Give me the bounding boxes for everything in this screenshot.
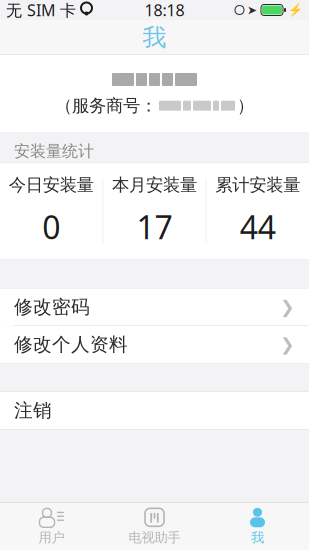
staticText: 17 (136, 206, 172, 248)
staticText: ❯ (280, 335, 295, 354)
staticText: 无 SIM 卡 (6, 0, 76, 21)
staticText: 安装量统计 (14, 141, 94, 161)
staticText: 我 (251, 529, 264, 546)
staticText: 本月安装量 (112, 174, 197, 196)
button[interactable]: 注销 (0, 392, 309, 429)
staticText: 电视助手 (128, 529, 180, 546)
staticText: 44 (240, 206, 276, 248)
button[interactable]: 修改密码 (0, 289, 309, 326)
staticText: 累计安装量 (215, 174, 300, 196)
staticText: 今日安装量 (9, 174, 94, 196)
staticText: ⚡ (288, 3, 303, 17)
staticText: ➤ (247, 3, 257, 17)
staticText: ❯ (280, 297, 295, 317)
staticText: 注销 (14, 399, 52, 422)
staticText: 修改密码 (14, 296, 90, 318)
staticText: 0 (42, 206, 60, 248)
staticText: 用户 (38, 529, 64, 546)
button[interactable]: 电视助手 (103, 503, 206, 550)
staticText: ） (237, 95, 254, 116)
staticText: 18:18 (144, 0, 184, 21)
button[interactable]: 用户 (0, 503, 103, 550)
button[interactable]: 我 (206, 503, 309, 550)
button[interactable]: 修改个人资料 (0, 326, 309, 363)
staticText: 修改个人资料 (14, 333, 128, 356)
staticText: 我 (142, 23, 166, 52)
staticText: （服务商号： (55, 95, 157, 116)
